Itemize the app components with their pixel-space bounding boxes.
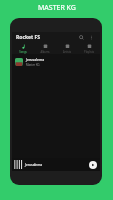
button[interactable]: Artists <box>56 43 78 54</box>
button[interactable]: More options <box>87 33 96 42</box>
staticText: MASTER KG <box>38 3 76 13</box>
button[interactable]: Playlists <box>78 43 100 54</box>
staticText: Albums <box>40 50 50 54</box>
staticText: Jerusalema <box>25 163 89 167</box>
button[interactable]: Jerusalema <box>12 56 100 68</box>
staticText: Master KG <box>26 63 40 67</box>
staticText: Playlists <box>84 50 94 54</box>
button[interactable]: Search <box>77 33 86 42</box>
button[interactable]: Songs <box>12 43 34 54</box>
button[interactable]: Jerusalema <box>12 158 100 171</box>
button[interactable]: Albums <box>34 43 56 54</box>
staticText: Artists <box>63 50 71 54</box>
button[interactable]: Play <box>89 161 97 169</box>
staticText: Rocket FS <box>16 34 41 41</box>
staticText: Jerusalema <box>26 57 45 62</box>
staticText: Songs <box>19 50 27 54</box>
